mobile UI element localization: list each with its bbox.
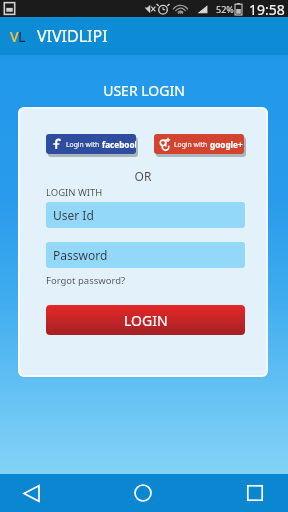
staticText: Password (53, 247, 108, 263)
staticText: OR (18, 168, 268, 184)
staticText: google+ (210, 139, 243, 150)
staticText: USER LOGIN (0, 81, 288, 100)
button[interactable]: Password (46, 242, 245, 268)
staticText: Login with (66, 140, 100, 149)
staticText: Login with (174, 140, 208, 149)
button[interactable]: LOGIN (46, 305, 245, 335)
staticText: 19:58 (249, 0, 285, 17)
staticText: V (10, 27, 19, 46)
staticText: facebook (102, 139, 136, 150)
button[interactable]: User Id (46, 202, 245, 228)
staticText: LOGIN WITH (46, 186, 103, 199)
staticText: L (18, 27, 26, 46)
button[interactable]: Forgot password? (46, 274, 126, 287)
staticText: 52% (216, 3, 234, 15)
button[interactable]: Login with (46, 134, 136, 154)
staticText: User Id (53, 207, 94, 223)
staticText: VIVIDLIPI (37, 25, 108, 47)
button[interactable]: Back (8, 474, 54, 512)
button[interactable]: Login with (154, 134, 244, 154)
button[interactable]: Recent apps (232, 474, 278, 512)
staticText: LOGIN (124, 311, 168, 330)
button[interactable]: Home (120, 474, 166, 512)
